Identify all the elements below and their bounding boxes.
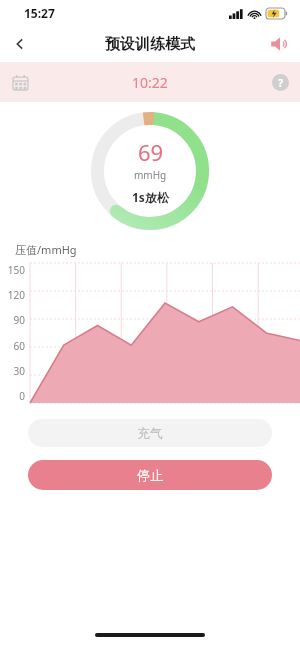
staticText: 90 <box>13 313 25 327</box>
button[interactable]: Sound <box>260 26 300 62</box>
staticText: 30 <box>13 364 25 378</box>
staticText: 60 <box>13 339 25 353</box>
button[interactable]: Help <box>260 62 300 102</box>
staticText: 69 <box>138 137 164 167</box>
staticText: mmHg <box>134 168 167 182</box>
button[interactable]: Calendar <box>0 62 40 102</box>
staticText: 0 <box>19 389 25 403</box>
staticText: 15:27 <box>24 5 55 21</box>
staticText: 预设训练模式 <box>105 35 195 54</box>
staticText: 充气 <box>137 425 163 441</box>
staticText: 停止 <box>137 467 163 483</box>
staticText: ? <box>278 75 284 90</box>
button[interactable]: 停止 <box>28 460 272 490</box>
button[interactable]: Back <box>0 26 40 62</box>
button[interactable]: 充气 <box>28 419 272 447</box>
staticText: 10:22 <box>132 73 168 92</box>
staticText: 压值/mmHg <box>15 242 77 257</box>
staticText: 150 <box>7 263 25 277</box>
staticText: 120 <box>7 288 25 302</box>
staticText: 1s放松 <box>132 189 169 205</box>
